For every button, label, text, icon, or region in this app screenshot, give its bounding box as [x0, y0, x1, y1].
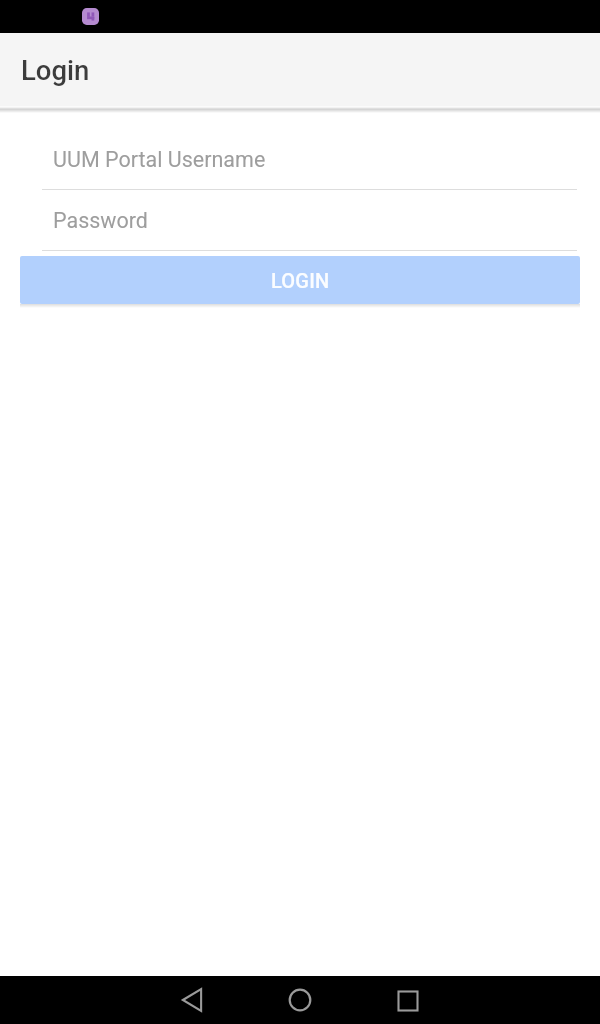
staticText: UUM Portal Username	[53, 147, 266, 172]
button[interactable]: Back	[144, 976, 240, 1024]
button[interactable]: Recents	[360, 976, 456, 1024]
button[interactable]: LOGIN	[20, 256, 580, 304]
button[interactable]: Password	[42, 190, 577, 251]
staticText: LOGIN	[271, 269, 330, 292]
staticText: Password	[53, 208, 148, 233]
button[interactable]: UUM Portal Username	[42, 129, 577, 190]
staticText: Login	[21, 54, 90, 86]
button[interactable]: Home	[240, 976, 360, 1024]
